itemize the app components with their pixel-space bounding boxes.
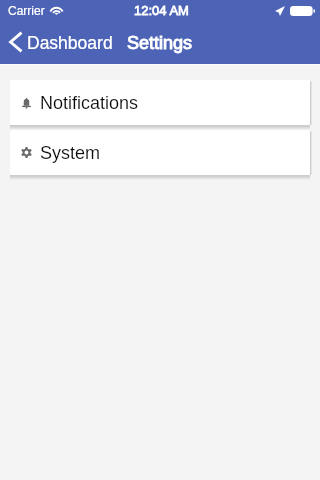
button[interactable]: System <box>10 130 310 175</box>
staticText: 12:04 AM <box>134 3 189 18</box>
other: Battery <box>290 6 315 16</box>
staticText: Carrier <box>8 4 45 17</box>
staticText: Settings <box>127 33 193 53</box>
other: Back <box>9 32 22 52</box>
other: Location <box>275 6 285 16</box>
staticText: Dashboard <box>27 33 113 53</box>
button[interactable]: Notifications <box>10 80 310 125</box>
staticText: Notifications <box>40 93 139 113</box>
button[interactable]: Back <box>0 23 119 63</box>
staticText: System <box>40 143 101 163</box>
